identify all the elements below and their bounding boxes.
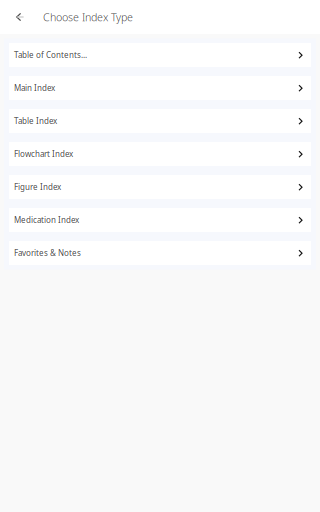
staticText: Table Index xyxy=(14,116,57,126)
button[interactable]: Figure Index xyxy=(9,175,311,199)
button[interactable]: Medication Index xyxy=(9,208,311,232)
button[interactable]: Back xyxy=(5,0,35,34)
button[interactable]: Flowchart Index xyxy=(9,142,311,166)
staticText: Figure Index xyxy=(14,182,61,192)
staticText: Table of Contents... xyxy=(14,50,87,60)
button[interactable]: Favorites & Notes xyxy=(9,241,311,265)
staticText: Medication Index xyxy=(14,215,79,225)
staticText: Flowchart Index xyxy=(14,149,73,159)
staticText: Favorites & Notes xyxy=(14,248,81,258)
button[interactable]: Table of Contents... xyxy=(9,43,311,67)
staticText: Main Index xyxy=(14,83,55,93)
staticText: Choose Index Type xyxy=(43,10,133,24)
button[interactable]: Main Index xyxy=(9,76,311,100)
button[interactable]: Table Index xyxy=(9,109,311,133)
